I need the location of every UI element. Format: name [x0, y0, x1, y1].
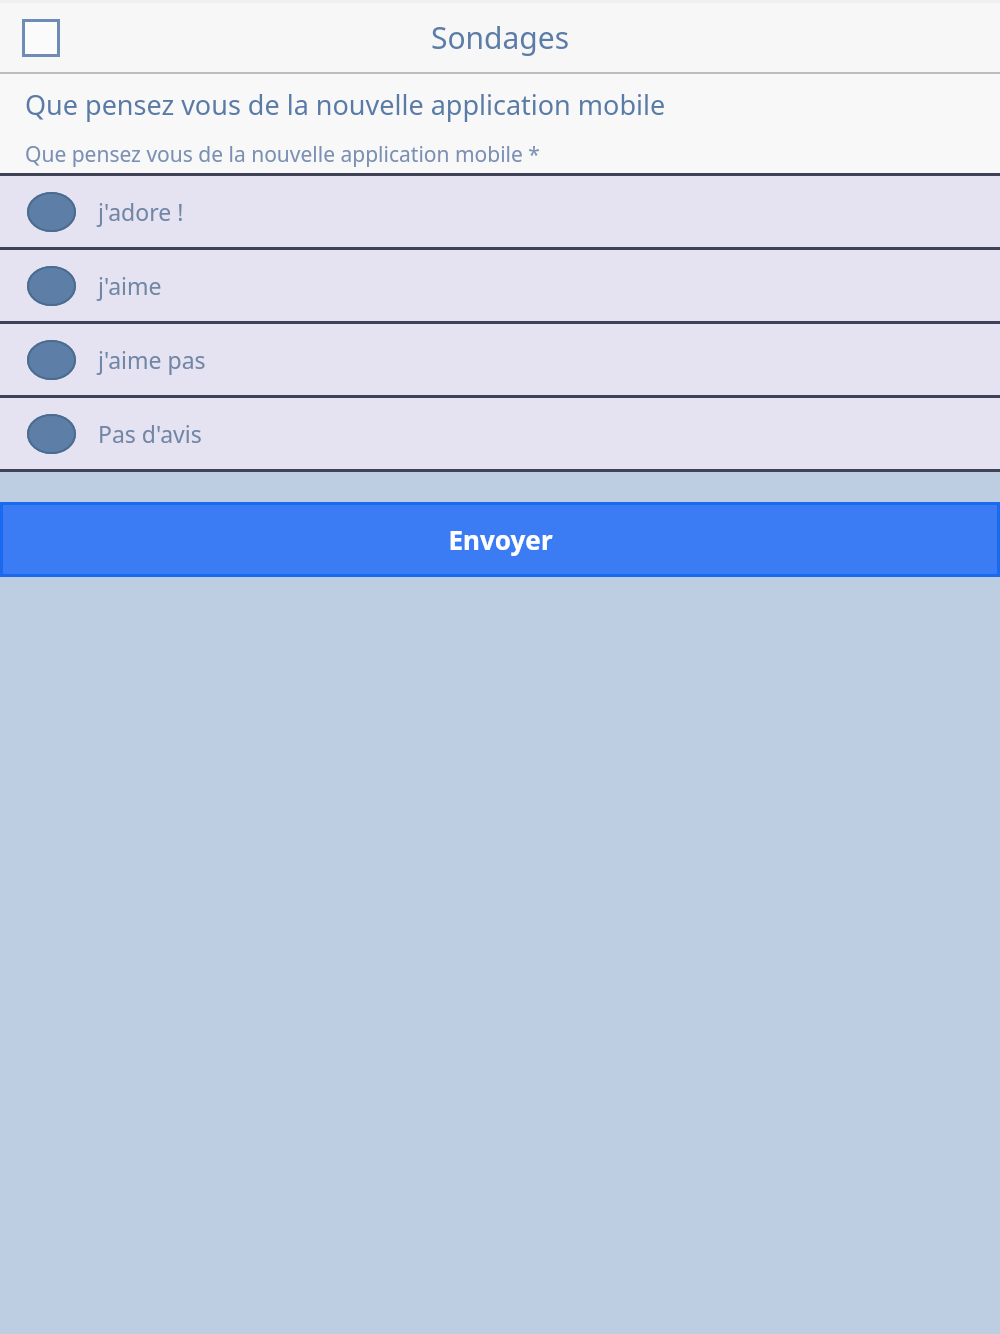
staticText: Que pensez vous de la nouvelle applicati… [25, 86, 666, 123]
button[interactable]: Pas d'avis [0, 398, 1000, 469]
button[interactable]: Select [22, 19, 60, 57]
button[interactable]: j'aime [0, 250, 1000, 321]
staticText: j'aime pas [98, 344, 206, 375]
staticText: j'aime [98, 270, 162, 301]
staticText: Envoyer [448, 522, 553, 557]
button[interactable]: Envoyer [0, 502, 1000, 577]
button[interactable]: j'aime pas [0, 324, 1000, 395]
staticText: Pas d'avis [98, 418, 202, 449]
button[interactable]: j'adore ! [0, 176, 1000, 247]
staticText: Que pensez vous de la nouvelle applicati… [25, 140, 540, 169]
staticText: Sondages [0, 17, 1000, 58]
staticText: j'adore ! [98, 196, 184, 227]
